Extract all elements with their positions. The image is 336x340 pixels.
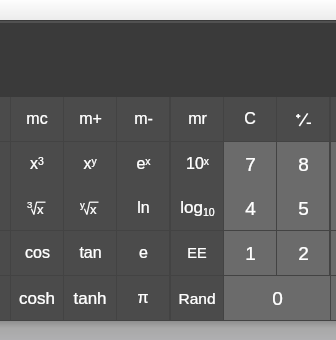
button[interactable]: cosh [11,276,63,320]
button[interactable]: x3 [11,142,63,186]
staticText: cosh [19,289,55,308]
button[interactable]: m- [117,97,169,141]
button[interactable]: mc [11,97,63,141]
staticText: tanh [73,289,107,308]
button[interactable]: 5 [277,186,329,230]
button[interactable]: 8 [277,142,329,186]
staticText: mr [188,110,207,128]
staticText: y [80,199,85,210]
button[interactable]: 1 [224,231,276,275]
staticText: cos [25,244,50,262]
staticText: x3 [30,155,44,173]
staticText: 2 [298,243,309,264]
staticText: 7 [245,154,256,175]
button[interactable]: cos [11,231,63,275]
button[interactable]: Plus minus [277,97,329,141]
staticText: 8 [298,154,309,175]
button[interactable]: e [117,231,169,275]
button[interactable]: 10x [171,142,223,186]
button[interactable]: log10 [171,186,223,230]
staticText: EE [187,245,207,261]
staticText: π [137,289,149,307]
staticText: x [37,202,44,217]
staticText: x [90,202,97,217]
button[interactable]: C [224,97,276,141]
staticText: log10 [180,198,215,218]
button[interactable]: xy [64,142,116,186]
button[interactable]: 4 [224,186,276,230]
button[interactable]: 2 [277,231,329,275]
staticText: 0 [272,288,283,309]
staticText: Rand [178,290,216,307]
staticText: 5 [298,198,309,219]
button[interactable]: tan [64,231,116,275]
button[interactable]: 7 [224,142,276,186]
staticText: m+ [79,110,102,128]
staticText: tan [79,244,102,262]
button[interactable]: π [117,276,169,320]
button[interactable]: ln [117,186,169,230]
button[interactable]: 0 [224,276,330,320]
button[interactable]: tanh [64,276,116,320]
staticText: e [139,244,148,262]
staticText: 3 [27,199,33,210]
button[interactable]: yth root [64,186,116,230]
button[interactable]: m+ [64,97,116,141]
staticText: ex [136,155,151,173]
button[interactable]: 3th root [11,186,63,230]
staticText: 1 [245,243,256,264]
staticText: mc [26,110,48,128]
button[interactable]: ex [117,142,169,186]
staticText: ln [137,199,150,217]
staticText: xy [83,155,97,173]
button[interactable]: mr [171,97,223,141]
button[interactable]: EE [171,231,223,275]
button[interactable]: Rand [171,276,223,320]
staticText: C [244,110,256,128]
staticText: m- [134,110,153,128]
staticText: 4 [245,198,256,219]
staticText: 10x [186,155,209,173]
